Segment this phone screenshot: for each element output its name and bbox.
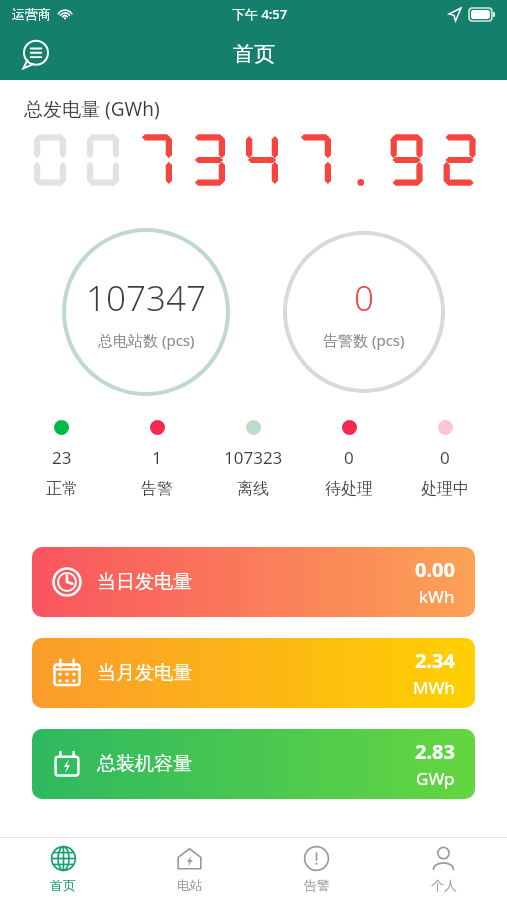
- staticText: 2.34: [415, 647, 455, 674]
- staticText: 首页: [50, 877, 76, 893]
- staticText: 离线: [237, 479, 269, 499]
- staticText: 个人: [431, 877, 457, 893]
- button[interactable]: 23: [14, 420, 109, 499]
- staticText: 正常: [46, 479, 78, 499]
- staticText: 告警: [141, 479, 173, 499]
- button[interactable]: 当日发电量: [32, 547, 475, 617]
- staticText: 总发电量 (GWh): [24, 96, 160, 122]
- staticText: 告警数 (pcs): [323, 330, 405, 350]
- staticText: 电站: [177, 877, 203, 893]
- staticText: 0: [354, 274, 374, 322]
- staticText: 0.00: [415, 556, 455, 583]
- staticText: 当日发电量: [97, 570, 192, 594]
- button[interactable]: Messages: [14, 32, 58, 76]
- button[interactable]: 0: [397, 420, 493, 499]
- button[interactable]: 0: [283, 231, 445, 393]
- staticText: 运营商: [12, 6, 51, 22]
- staticText: 2.83: [415, 738, 455, 765]
- staticText: 0: [344, 446, 354, 469]
- staticText: MWh: [413, 676, 455, 699]
- staticText: 1: [152, 446, 162, 469]
- button[interactable]: 电站: [126, 838, 253, 900]
- staticText: 告警: [304, 877, 330, 893]
- button[interactable]: 当月发电量: [32, 638, 475, 708]
- staticText: 总装机容量: [97, 752, 192, 776]
- staticText: 107323: [224, 446, 283, 469]
- staticText: 待处理: [325, 479, 373, 499]
- button[interactable]: 0: [301, 420, 397, 499]
- staticText: GWp: [416, 767, 455, 790]
- staticText: 0: [440, 446, 450, 469]
- staticText: kWh: [419, 585, 455, 608]
- button[interactable]: 107323: [205, 420, 301, 499]
- button[interactable]: 首页: [0, 838, 126, 900]
- button[interactable]: 总装机容量: [32, 729, 475, 799]
- staticText: 总电站数 (pcs): [98, 330, 195, 350]
- staticText: 当月发电量: [97, 661, 192, 685]
- staticText: 处理中: [421, 479, 469, 499]
- staticText: 23: [52, 446, 72, 469]
- staticText: 107347: [86, 274, 206, 322]
- button[interactable]: 107347: [62, 228, 230, 396]
- button[interactable]: 告警: [253, 838, 380, 900]
- button[interactable]: 1: [109, 420, 205, 499]
- button[interactable]: 个人: [380, 838, 507, 900]
- staticText: 下午 4:57: [232, 5, 288, 23]
- staticText: 首页: [233, 41, 275, 67]
